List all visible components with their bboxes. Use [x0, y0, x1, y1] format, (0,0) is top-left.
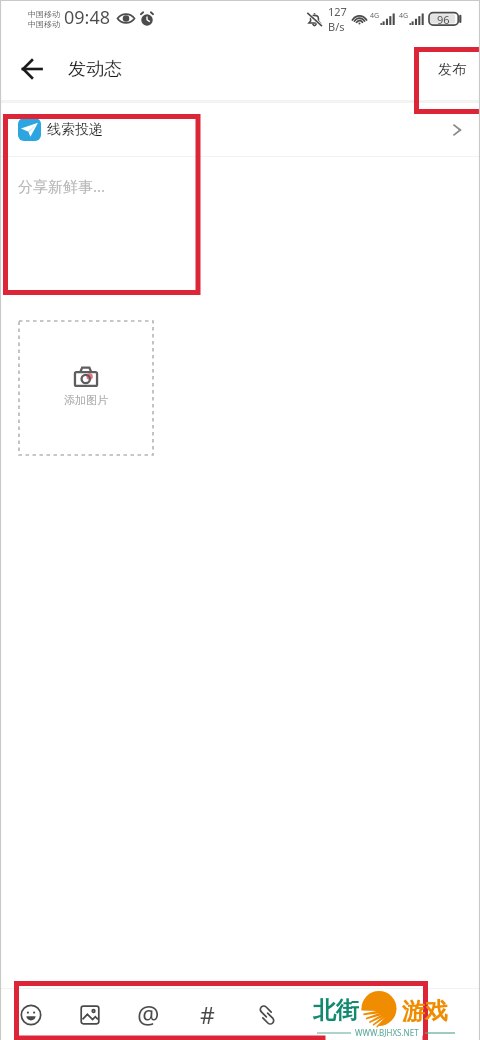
button[interactable]: Image [60, 989, 119, 1040]
staticText: 游戏 [402, 997, 448, 1026]
button[interactable]: Add image [19, 321, 153, 455]
button[interactable]: Mention [119, 989, 178, 1040]
staticText: 中国移动 [28, 19, 60, 29]
staticText: B/s [328, 19, 345, 34]
button[interactable]: 线索投递 [0, 103, 480, 156]
staticText: 96 [437, 12, 450, 27]
staticText: 发布 [438, 61, 466, 79]
staticText: 线索投递 [47, 121, 103, 139]
staticText: # [200, 999, 215, 1030]
button[interactable]: Back [11, 48, 53, 90]
staticText: WWW.BJHXS.NET [355, 1027, 419, 1038]
button[interactable]: 发布 [438, 37, 480, 100]
staticText: 添加图片 [64, 393, 108, 407]
staticText: 中国移动 [28, 9, 60, 19]
staticText: 发动态 [68, 58, 122, 81]
button[interactable]: 分享新鲜事... [18, 176, 106, 196]
staticText: 4G [370, 11, 380, 21]
staticText: 127 [328, 4, 347, 19]
button[interactable]: Emoji [1, 989, 60, 1040]
staticText: 北街 [313, 996, 359, 1025]
button[interactable]: Topic [178, 989, 237, 1040]
staticText: 09:48 [64, 5, 111, 30]
staticText: @ [137, 997, 160, 1031]
button[interactable]: Link [237, 989, 296, 1040]
staticText: 4G [399, 11, 409, 21]
